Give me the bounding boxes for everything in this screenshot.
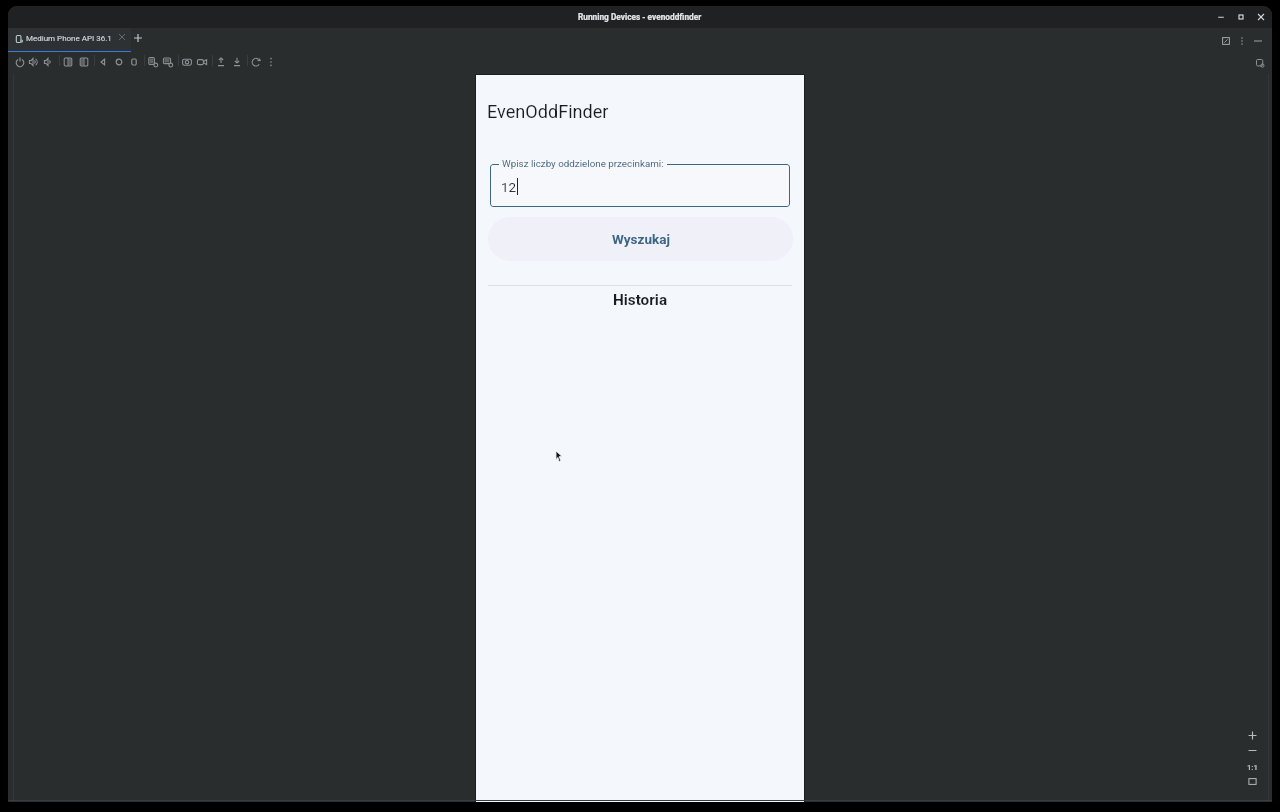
button[interactable]: Wyszukaj [488,217,793,261]
button[interactable]: Upload to device [213,54,229,70]
staticText: Medium Phone API 36.1 [26,34,112,43]
button[interactable]: Home [111,54,127,70]
staticText: Wyszukaj [612,231,670,247]
button[interactable]: Hide [1250,33,1266,49]
button[interactable]: Device settings [145,54,161,70]
button[interactable]: Close tab [117,32,127,42]
button[interactable]: Zoom in [1243,728,1261,743]
button[interactable]: 12 [490,164,790,207]
button[interactable]: More options [1234,33,1250,49]
button[interactable]: Emulator settings [1252,55,1268,71]
button[interactable]: New tab [132,32,144,44]
button[interactable]: More [263,54,279,70]
staticText: Running Devices - evenoddfinder [578,12,702,22]
button[interactable]: Overview [126,54,142,70]
staticText: Historia [476,291,804,309]
button[interactable]: Maximize [1231,7,1251,27]
button[interactable]: Record screen [194,54,210,70]
button[interactable]: Power [12,54,28,70]
button[interactable]: Zoom to actual size [1243,760,1261,774]
button[interactable]: Close [1251,7,1271,27]
button[interactable]: Download from device [229,54,245,70]
staticText: EvenOddFinder [487,101,609,122]
button[interactable]: Back [95,54,111,70]
button[interactable]: Unfold [76,54,92,70]
button[interactable]: Volume down [41,54,57,70]
button[interactable]: Zoom out [1243,743,1261,758]
button[interactable]: Open in window [1218,33,1234,49]
button[interactable]: Zoom to fit [1243,774,1261,789]
button[interactable]: Screenshot [179,54,195,70]
button[interactable]: Restart [248,54,264,70]
staticText: 12 [501,179,517,195]
staticText: 1:1 [1247,763,1258,772]
button[interactable]: Fold [60,54,76,70]
button[interactable]: Minimize [1211,7,1231,27]
button[interactable]: Device mirroring [160,54,176,70]
staticText: Wpisz liczby oddzielone przecinkami: [502,158,664,169]
button[interactable]: Volume up [26,54,42,70]
